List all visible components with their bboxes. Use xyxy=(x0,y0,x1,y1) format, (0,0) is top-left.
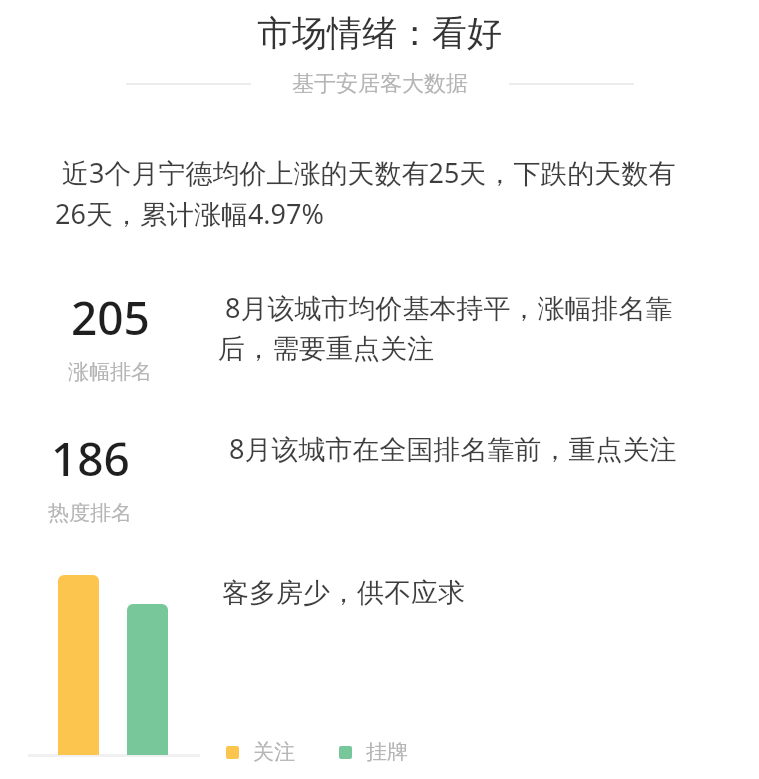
button[interactable]: 186 xyxy=(48,427,132,526)
staticText: 客多房少，供不应求 xyxy=(222,576,465,610)
staticText: 挂牌 xyxy=(366,739,408,765)
staticText: 8月该城市均价基本持平，涨幅排名靠后，需要重点关注 xyxy=(218,289,690,366)
staticText: 关注 xyxy=(253,739,295,765)
staticText: 市场情绪：看好 xyxy=(0,11,759,55)
staticText: 热度排名 xyxy=(48,500,132,526)
button[interactable]: 205 xyxy=(68,286,152,385)
staticText: 8月该城市在全国排名靠前，重点关注 xyxy=(222,430,702,467)
staticText: 205 xyxy=(71,286,150,349)
staticText: 基于安居客大数据 xyxy=(292,70,468,98)
staticText: 涨幅排名 xyxy=(68,359,152,385)
button[interactable]: 挂牌 xyxy=(339,739,408,765)
staticText: 186 xyxy=(51,427,130,490)
button[interactable]: 关注 xyxy=(226,739,295,765)
other: 关注 xyxy=(226,746,239,759)
staticText: 近3个月宁德均价上涨的天数有25天，下跌的天数有26天，累计涨幅4.97% xyxy=(55,154,687,232)
other: 挂牌 xyxy=(339,746,352,759)
